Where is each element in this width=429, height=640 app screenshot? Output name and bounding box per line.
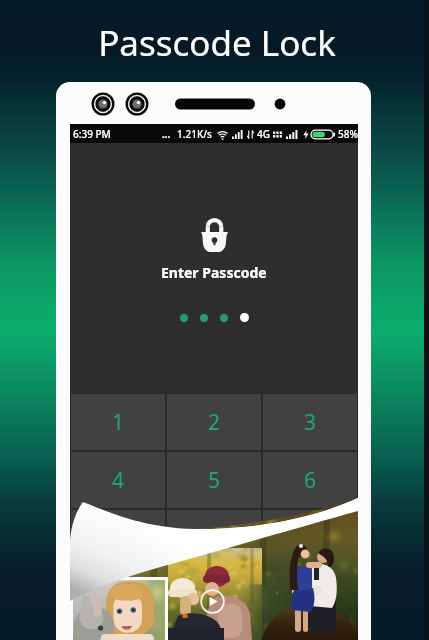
- button[interactable]: 5: [167, 452, 261, 508]
- button[interactable]: 6: [263, 452, 357, 508]
- staticText: Passcode Lock: [98, 19, 336, 67]
- button[interactable]: 9: [263, 510, 357, 566]
- staticText: 6:39 PM: [73, 127, 111, 141]
- staticText: 8: [208, 524, 221, 553]
- staticText: 1.21K/s: [177, 127, 212, 141]
- button[interactable]: 1: [71, 394, 165, 450]
- staticText: 58%: [338, 127, 358, 141]
- button[interactable]: 3: [263, 394, 357, 450]
- button[interactable]: 7: [71, 510, 165, 566]
- staticText: 2: [208, 408, 221, 437]
- staticText: 6: [304, 466, 317, 495]
- button[interactable]: 2: [167, 394, 261, 450]
- staticText: 5: [208, 466, 221, 495]
- staticText: ...: [162, 127, 171, 141]
- staticText: 4: [112, 466, 125, 495]
- staticText: 3: [304, 408, 317, 437]
- staticText: 1: [112, 408, 125, 437]
- staticText: 4G: [257, 127, 270, 141]
- staticText: 9: [304, 524, 317, 553]
- button[interactable]: 8: [167, 510, 261, 566]
- staticText: Enter Passcode: [161, 263, 267, 282]
- button[interactable]: 4: [71, 452, 165, 508]
